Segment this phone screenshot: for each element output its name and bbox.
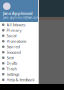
staticText: Sent xyxy=(6,55,13,60)
staticText: Promotions xyxy=(6,39,26,44)
staticText: Jane Appleseed xyxy=(3,11,33,16)
button[interactable]: All Inboxes xyxy=(0,22,38,27)
button[interactable]: Help & feedback xyxy=(0,77,38,82)
button[interactable]: Trash xyxy=(0,66,38,71)
button[interactable]: Starred xyxy=(0,44,38,49)
staticText: Social xyxy=(6,33,16,38)
staticText: jane.appleseed@mail.com xyxy=(3,16,38,19)
button[interactable]: Snoozed xyxy=(0,49,38,55)
button[interactable]: Social xyxy=(0,33,38,38)
button[interactable]: Drafts xyxy=(0,60,38,66)
button[interactable]: Primary xyxy=(0,27,38,33)
staticText: Help & feedback xyxy=(6,77,34,82)
button[interactable]: Settings xyxy=(0,71,38,77)
button[interactable]: Promotions xyxy=(0,38,38,44)
staticText: Primary xyxy=(6,28,21,33)
staticText: Settings xyxy=(6,72,19,77)
button[interactable]: Sent xyxy=(0,55,38,60)
staticText: Drafts xyxy=(6,61,17,66)
staticText: All Inboxes xyxy=(6,22,25,27)
staticText: Starred xyxy=(6,44,19,49)
staticText: Snoozed xyxy=(6,50,20,55)
staticText: Trash xyxy=(6,66,16,71)
